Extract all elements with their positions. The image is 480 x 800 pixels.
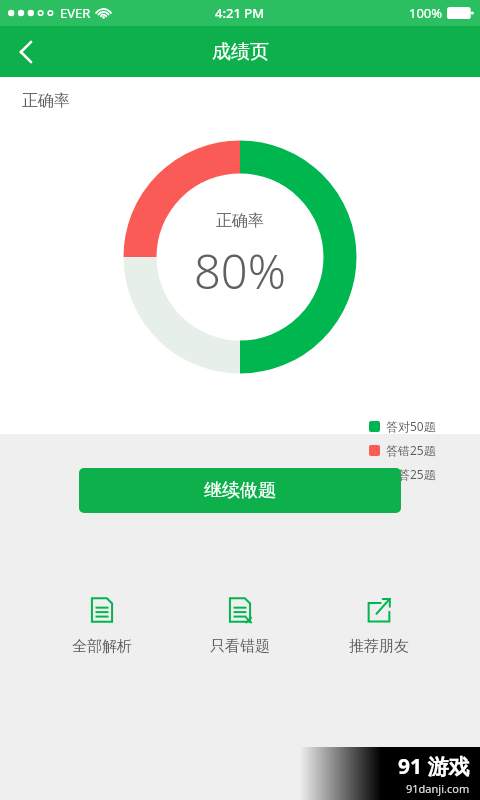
staticText: 只看错题 (210, 637, 270, 656)
button[interactable]: 只看错题 (185, 591, 295, 658)
staticText: 4:21 PM (215, 4, 265, 22)
staticText: 继续做题 (204, 479, 276, 502)
staticText: EVER (60, 4, 91, 22)
staticText: 80% (194, 239, 286, 303)
staticText: 答错25题 (386, 442, 436, 458)
button[interactable]: 推荐朋友 (324, 591, 434, 658)
staticText: 91danji.com (406, 781, 470, 796)
staticText: 91 游戏 (398, 752, 470, 781)
button[interactable]: 全部解析 (47, 591, 157, 658)
staticText: 推荐朋友 (349, 637, 409, 656)
staticText: 正确率 (22, 91, 70, 111)
staticText: 答对50题 (386, 418, 436, 434)
button[interactable]: 继续做题 (79, 468, 401, 513)
button[interactable]: Back (0, 26, 52, 77)
staticText: 未答25题 (386, 466, 436, 482)
staticText: 100% (409, 4, 443, 22)
staticText: 成绩页 (212, 40, 269, 64)
staticText: 正确率 (216, 211, 264, 231)
staticText: 全部解析 (72, 637, 132, 656)
